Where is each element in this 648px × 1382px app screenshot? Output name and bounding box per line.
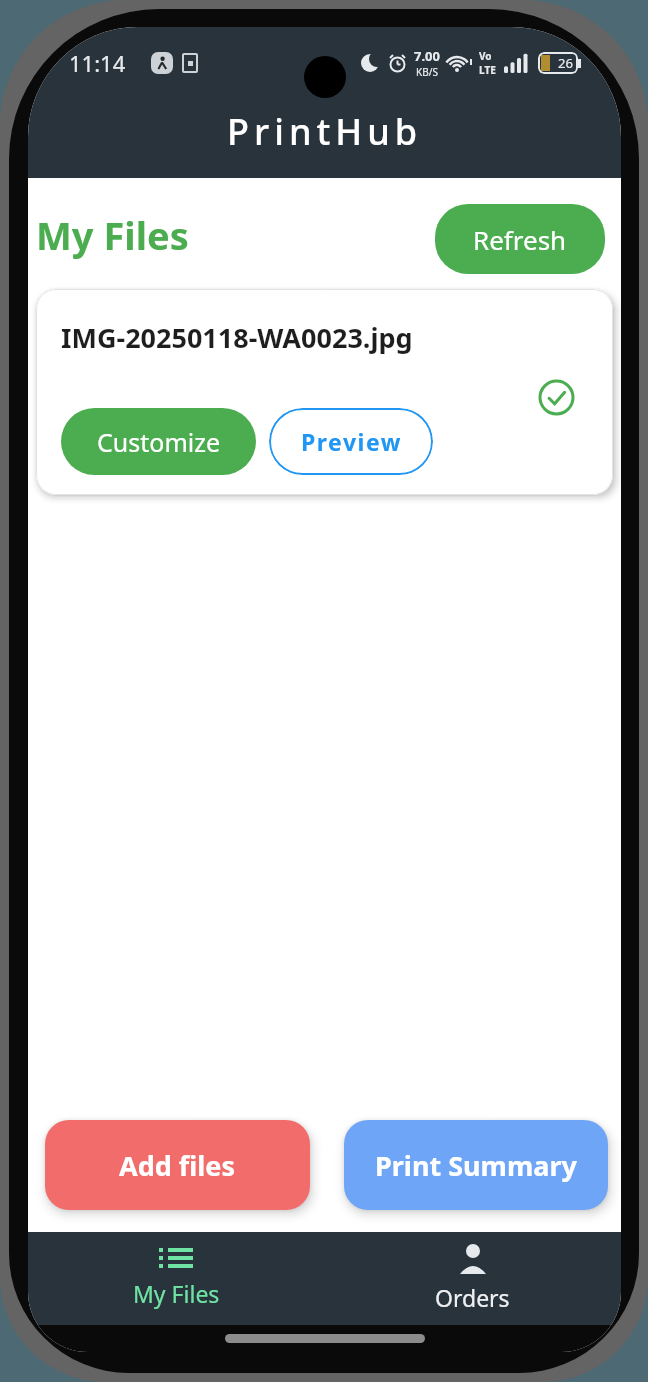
staticText: Customize bbox=[97, 425, 221, 459]
button[interactable]: IMG-20250118-WA0023.jpg bbox=[36, 289, 613, 495]
staticText: 26 bbox=[558, 54, 573, 72]
button[interactable]: Add files bbox=[45, 1120, 310, 1210]
button[interactable]: Preview bbox=[269, 408, 433, 475]
button[interactable]: My Files bbox=[28, 1232, 324, 1325]
staticText: Preview bbox=[301, 426, 402, 457]
staticText: Vo bbox=[479, 49, 492, 63]
staticText: My Files bbox=[36, 209, 189, 261]
button[interactable]: Print Summary bbox=[344, 1120, 608, 1210]
staticText: My Files bbox=[133, 1278, 220, 1309]
staticText: PrintHub bbox=[227, 107, 423, 156]
staticText: Print Summary bbox=[375, 1147, 577, 1184]
button[interactable]: Customize bbox=[61, 408, 256, 475]
staticText: IMG-20250118-WA0023.jpg bbox=[61, 319, 413, 356]
button[interactable]: Refresh bbox=[435, 204, 605, 274]
button[interactable]: Orders bbox=[324, 1232, 621, 1325]
staticText: KB/S bbox=[416, 65, 438, 79]
staticText: Refresh bbox=[473, 222, 567, 257]
staticText: Add files bbox=[119, 1147, 236, 1184]
staticText: 11:14 bbox=[69, 48, 126, 78]
staticText: Orders bbox=[435, 1282, 510, 1313]
staticText: 7.00 bbox=[414, 47, 440, 65]
staticText: LTE bbox=[479, 63, 496, 77]
